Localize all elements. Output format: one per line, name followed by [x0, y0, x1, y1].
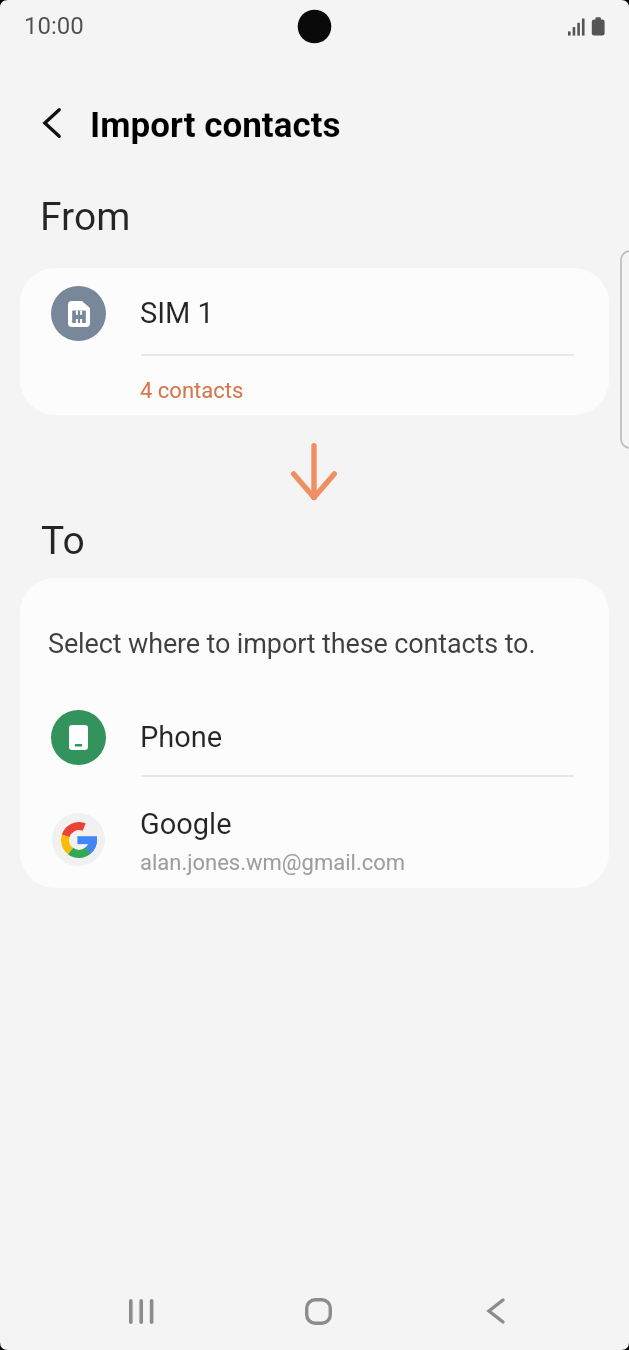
button[interactable]: Phone	[20, 688, 609, 776]
staticText: From	[40, 194, 131, 240]
staticText: Google	[140, 807, 232, 841]
staticText: Import contacts	[90, 105, 341, 146]
staticText: alan.jones.wm@gmail.com	[140, 850, 406, 876]
button[interactable]: SIM 1	[20, 268, 609, 415]
button[interactable]: Google	[20, 786, 609, 888]
staticText: 4 contacts	[140, 378, 244, 404]
staticText: SIM 1	[140, 296, 214, 330]
staticText: Phone	[140, 720, 223, 754]
staticText: Select where to import these contacts to…	[48, 628, 536, 660]
button[interactable]: Recent apps	[92, 1271, 192, 1350]
button[interactable]: Back	[446, 1271, 546, 1350]
button[interactable]: Back	[18, 89, 86, 157]
staticText: 10:00	[24, 12, 84, 40]
staticText: To	[41, 518, 85, 564]
button[interactable]: Home	[268, 1271, 368, 1350]
